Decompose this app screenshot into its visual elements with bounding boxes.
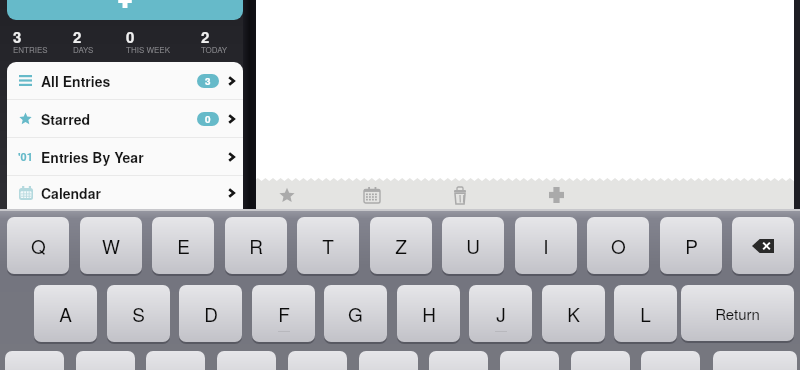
staticText: E <box>177 232 190 259</box>
button[interactable]: L <box>614 285 677 342</box>
staticText: U <box>466 232 480 259</box>
button[interactable]: G <box>324 285 387 342</box>
staticText: G <box>348 300 363 327</box>
button[interactable]: Backspace <box>732 217 794 274</box>
button[interactable]: New entry <box>7 0 243 20</box>
staticText: ENTRIES <box>13 44 48 55</box>
button[interactable]: K <box>542 285 605 342</box>
staticText: '01 <box>18 149 33 165</box>
button[interactable]: ? <box>641 351 700 370</box>
staticText: THIS WEEK <box>126 44 171 55</box>
button[interactable]: R <box>225 217 287 274</box>
staticText: I <box>543 232 549 259</box>
staticText: R <box>249 232 263 259</box>
button[interactable]: Starred <box>7 100 243 137</box>
button[interactable]: M <box>429 351 488 370</box>
staticText: A <box>59 300 72 327</box>
staticText: 3 <box>13 26 22 47</box>
staticText: Entries By Year <box>41 147 144 167</box>
staticText: Q <box>31 232 46 259</box>
staticText: 2 <box>73 26 82 47</box>
staticText: T <box>322 232 334 259</box>
staticText: Return <box>715 303 760 324</box>
button[interactable]: I <box>515 217 577 274</box>
staticText: 0 <box>126 26 135 47</box>
staticText: 0 <box>205 112 211 126</box>
button[interactable]: D <box>179 285 242 342</box>
button[interactable]: Return <box>681 285 794 341</box>
button[interactable]: P <box>660 217 722 274</box>
button[interactable]: U <box>442 217 504 274</box>
staticText: 3 <box>205 74 211 88</box>
staticText: L <box>640 300 651 327</box>
button[interactable]: '01 <box>7 138 243 175</box>
staticText: 2 <box>201 26 210 47</box>
staticText: F <box>278 300 290 327</box>
button[interactable]: S <box>107 285 170 342</box>
button[interactable]: T <box>297 217 359 274</box>
staticText: Calendar <box>41 183 101 203</box>
button[interactable]: E <box>152 217 214 274</box>
staticText: D <box>204 300 218 327</box>
staticText: TODAY <box>201 44 228 55</box>
button[interactable]: Starred <box>273 181 301 209</box>
staticText: O <box>611 232 626 259</box>
button[interactable]: Calendar <box>7 176 243 209</box>
button[interactable]: C <box>146 351 205 370</box>
button[interactable]: V <box>217 351 276 370</box>
staticText: DAYS <box>73 44 94 55</box>
staticText: K <box>567 300 580 327</box>
button[interactable]: All Entries <box>7 62 243 99</box>
button[interactable]: Q <box>7 217 69 274</box>
button[interactable]: H <box>397 285 460 342</box>
button[interactable]: O <box>587 217 649 274</box>
button[interactable]: Add <box>542 181 570 209</box>
staticText: W <box>102 232 120 259</box>
staticText: Z <box>395 232 407 259</box>
button[interactable]: F <box>252 285 315 342</box>
staticText: Starred <box>41 109 91 129</box>
button[interactable]: Y <box>5 351 64 370</box>
button[interactable]: Shift <box>713 351 797 370</box>
button[interactable]: J <box>469 285 532 342</box>
button[interactable]: , <box>500 351 559 370</box>
staticText: H <box>422 300 436 327</box>
staticText: P <box>685 232 698 259</box>
button[interactable]: Calendar <box>358 181 386 209</box>
button[interactable]: X <box>76 351 135 370</box>
button[interactable]: W <box>80 217 142 274</box>
staticText: S <box>132 300 145 327</box>
button[interactable]: A <box>34 285 97 342</box>
button[interactable]: Delete <box>446 181 474 209</box>
button[interactable]: N <box>359 351 418 370</box>
button[interactable]: Z <box>370 217 432 274</box>
button[interactable]: B <box>288 351 347 370</box>
staticText: All Entries <box>41 71 111 91</box>
button[interactable]: ! <box>571 351 630 370</box>
staticText: J <box>496 300 506 327</box>
